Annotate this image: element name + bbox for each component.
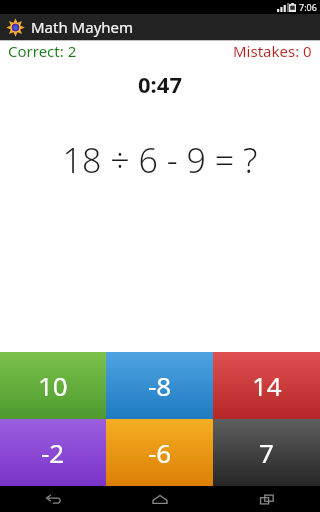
staticText: -6 — [148, 435, 172, 470]
staticText: 10 — [38, 368, 68, 403]
staticText: -2 — [41, 435, 65, 470]
staticText: 18 ÷ 6 - 9 = ? — [0, 137, 320, 183]
button[interactable]: -8 — [106, 352, 213, 419]
staticText: Math Mayhem — [31, 17, 134, 37]
button[interactable]: -6 — [106, 419, 213, 486]
button[interactable]: Back — [0, 486, 106, 512]
staticText: 14 — [252, 368, 282, 403]
staticText: Correct: 2 — [8, 41, 77, 61]
staticText: Mistakes: 0 — [233, 41, 312, 61]
staticText: 7:06 — [299, 1, 317, 13]
button[interactable]: 7 — [213, 419, 320, 486]
button[interactable]: 14 — [213, 352, 320, 419]
staticText: -8 — [148, 368, 172, 403]
button[interactable]: 10 — [0, 352, 106, 419]
button[interactable]: Home — [106, 486, 213, 512]
button[interactable]: Recent apps — [213, 486, 320, 512]
staticText: 0:47 — [0, 69, 320, 95]
button[interactable]: -2 — [0, 419, 106, 486]
staticText: 7 — [259, 435, 274, 470]
